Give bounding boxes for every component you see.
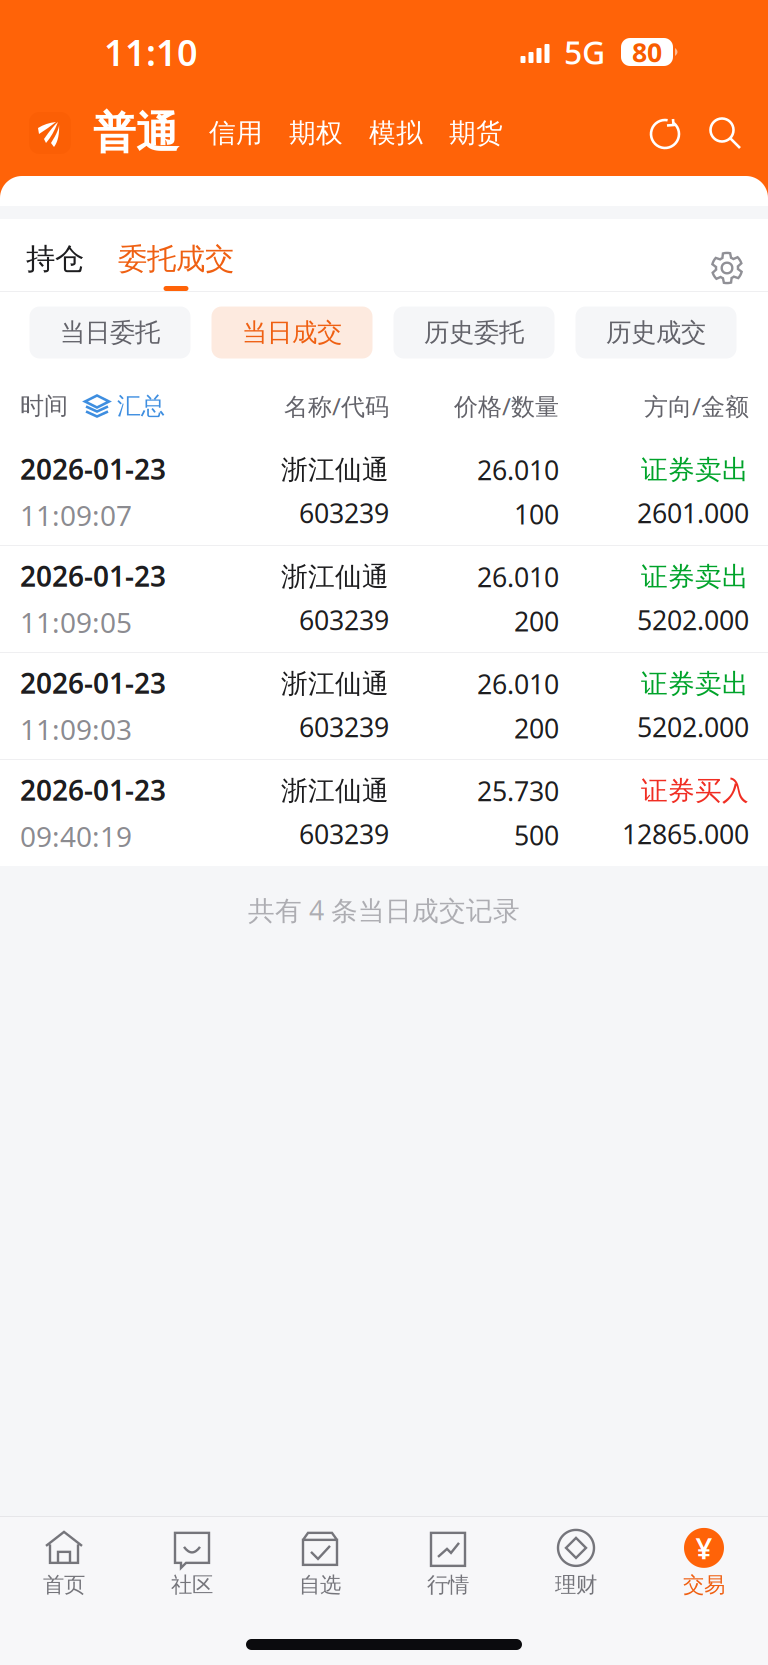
button[interactable]: 历史成交 [575,306,736,358]
staticText: 价格/数量 [454,390,559,422]
button[interactable]: 2026-01-23 [0,439,768,545]
staticText: 自选 [299,1572,341,1598]
staticText: 26.010 [477,559,559,594]
staticText: 603239 [299,709,389,745]
staticText: 11:09:07 [20,496,132,534]
button[interactable]: ¥ [640,1517,768,1609]
staticText: 2026-01-23 [20,450,166,487]
button[interactable]: 自选 [256,1517,384,1609]
staticText: 80 [632,34,662,70]
staticText: 首页 [43,1572,85,1598]
button[interactable]: 当日委托 [29,306,190,358]
button[interactable]: 理财 [512,1517,640,1609]
staticText: 普通 [93,107,179,159]
button[interactable]: 汇总 [68,391,165,421]
staticText: 200 [514,710,559,746]
staticText: 行情 [427,1572,469,1598]
button[interactable]: 2026-01-23 [0,546,768,652]
button[interactable]: 委托成交 [84,241,234,291]
staticText: 浙江仙通 [281,560,389,593]
staticText: 社区 [171,1572,213,1598]
staticText: 浙江仙通 [281,774,389,807]
staticText: 方向/金额 [644,390,749,422]
button[interactable]: 行情 [384,1517,512,1609]
staticText: 模拟 [369,117,423,149]
staticText: 期权 [289,117,343,149]
staticText: 浙江仙通 [281,667,389,700]
staticText: 交易 [683,1572,725,1598]
staticText: 共有 4 条当日成交记录 [248,892,520,928]
staticText: 26.010 [477,452,559,487]
staticText: 09:40:19 [20,817,132,855]
staticText: 12865.000 [622,816,749,852]
staticText: 11:09:05 [20,603,132,641]
staticText: 26.010 [477,666,559,701]
staticText: 603239 [299,816,389,852]
staticText: 5202.000 [637,709,749,745]
staticText: 2026-01-23 [20,557,166,594]
staticText: 持仓 [26,241,84,277]
button[interactable]: 首页 [0,1517,128,1609]
staticText: 信用 [209,117,263,149]
staticText: 25.730 [477,773,559,808]
staticText: 2026-01-23 [20,664,166,701]
staticText: 当日委托 [60,317,160,348]
staticText: 证券卖出 [641,453,749,486]
button[interactable]: Refresh [646,114,684,152]
staticText: 汇总 [117,391,165,421]
staticText: 历史委托 [424,317,524,348]
staticText: 5G [564,31,605,73]
staticText: 历史成交 [606,317,706,348]
button[interactable]: 持仓 [26,241,84,291]
button[interactable]: Search [684,114,744,152]
staticText: ¥ [695,1528,712,1567]
staticText: 当日成交 [242,317,342,348]
staticText: 浙江仙通 [281,453,389,486]
button[interactable]: 2026-01-23 [0,760,768,866]
staticText: 2026-01-23 [20,771,166,808]
staticText: 证券卖出 [641,667,749,700]
staticText: 时间 [20,391,68,421]
staticText: 名称/代码 [284,390,389,422]
button[interactable]: 历史委托 [393,306,554,358]
staticText: 2601.000 [637,495,749,531]
button[interactable]: Settings [710,251,744,291]
button[interactable]: 2026-01-23 [0,653,768,759]
staticText: 603239 [299,602,389,638]
staticText: 理财 [555,1572,597,1598]
staticText: 5202.000 [637,602,749,638]
staticText: 11:09:03 [20,710,132,748]
staticText: 期货 [449,117,503,149]
button[interactable]: 当日成交 [211,306,372,358]
staticText: 证券买入 [641,774,749,807]
staticText: 委托成交 [118,241,234,277]
staticText: 603239 [299,495,389,531]
staticText: 200 [514,603,559,639]
staticText: 100 [514,496,559,532]
staticText: 证券卖出 [641,560,749,593]
button[interactable]: 社区 [128,1517,256,1609]
staticText: 11:10 [104,28,198,76]
staticText: 500 [514,817,559,853]
